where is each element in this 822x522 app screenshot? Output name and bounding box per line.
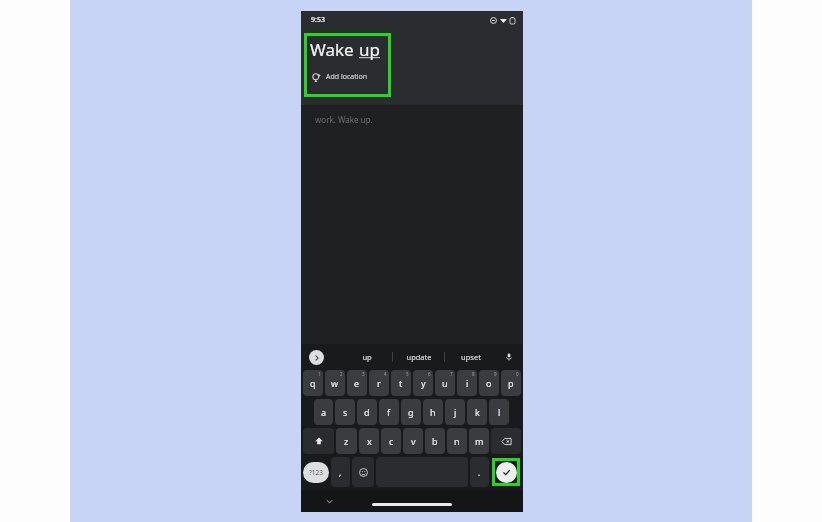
button[interactable]: k bbox=[467, 399, 487, 425]
staticText: x bbox=[367, 435, 372, 447]
button[interactable]: Hide keyboard bbox=[323, 495, 335, 507]
staticText: 6 bbox=[428, 371, 431, 377]
staticText: Add location bbox=[326, 72, 368, 82]
button[interactable]: b bbox=[425, 428, 445, 454]
button[interactable]: s bbox=[335, 399, 355, 425]
staticText: v bbox=[411, 435, 416, 447]
button[interactable]: d bbox=[357, 399, 377, 425]
button[interactable]: t bbox=[391, 370, 411, 396]
staticText: c bbox=[389, 435, 394, 447]
staticText: up bbox=[362, 352, 372, 362]
staticText: y bbox=[421, 377, 426, 389]
button[interactable]: upset bbox=[445, 344, 496, 370]
staticText: f bbox=[387, 406, 391, 418]
button[interactable]: l bbox=[489, 399, 509, 425]
button[interactable]: p bbox=[501, 370, 521, 396]
staticText: o bbox=[486, 377, 492, 389]
staticText: , bbox=[339, 467, 342, 478]
button[interactable]: Expand suggestions bbox=[309, 350, 324, 365]
staticText: u bbox=[442, 377, 448, 389]
staticText: 9 bbox=[494, 371, 497, 377]
button[interactable]: j bbox=[445, 399, 465, 425]
staticText: d bbox=[364, 406, 370, 418]
staticText: 8 bbox=[472, 371, 475, 377]
button[interactable]: i bbox=[457, 370, 477, 396]
button[interactable]: n bbox=[447, 428, 467, 454]
button[interactable]: , bbox=[331, 457, 350, 487]
button[interactable]: o bbox=[479, 370, 499, 396]
staticText: 0 bbox=[516, 371, 519, 377]
button[interactable]: Backspace bbox=[491, 428, 521, 454]
button[interactable]: u bbox=[435, 370, 455, 396]
staticText: a bbox=[321, 406, 327, 418]
staticText: i bbox=[466, 377, 469, 389]
staticText: 2 bbox=[340, 371, 343, 377]
staticText: t bbox=[399, 377, 403, 389]
staticText: work. Wake up. bbox=[315, 114, 373, 125]
staticText: b bbox=[432, 435, 438, 447]
button[interactable]: Add location bbox=[310, 70, 370, 84]
staticText: 5 bbox=[406, 371, 409, 377]
button[interactable]: y bbox=[413, 370, 433, 396]
button[interactable]: Done bbox=[496, 462, 517, 483]
staticText: h bbox=[430, 406, 436, 418]
button[interactable]: Voice input bbox=[502, 350, 516, 364]
button[interactable]: w bbox=[325, 370, 345, 396]
staticText: q bbox=[310, 377, 316, 389]
staticText: 4 bbox=[384, 371, 387, 377]
button[interactable]: e bbox=[347, 370, 367, 396]
button[interactable]: x bbox=[359, 428, 379, 454]
staticText: s bbox=[343, 406, 348, 418]
button[interactable]: z bbox=[336, 428, 357, 454]
staticText: 3 bbox=[362, 371, 365, 377]
staticText: Wake bbox=[310, 38, 359, 61]
button[interactable]: h bbox=[423, 399, 443, 425]
staticText: m bbox=[475, 435, 484, 447]
staticText: 9:53 bbox=[311, 15, 325, 25]
staticText: upset bbox=[461, 352, 481, 362]
staticText: up bbox=[359, 38, 380, 61]
staticText: r bbox=[377, 377, 381, 389]
button[interactable]: Shift bbox=[303, 428, 334, 454]
staticText: update bbox=[406, 352, 432, 362]
staticText: 7 bbox=[450, 371, 453, 377]
button[interactable]: g bbox=[401, 399, 421, 425]
staticText: l bbox=[498, 406, 501, 418]
button[interactable]: q bbox=[303, 370, 323, 396]
button[interactable]: . bbox=[470, 457, 489, 487]
staticText: g bbox=[408, 406, 414, 418]
button[interactable]: Emoji bbox=[352, 457, 374, 487]
button[interactable]: ?123 bbox=[303, 462, 329, 483]
staticText: w bbox=[331, 377, 339, 389]
staticText: z bbox=[344, 435, 349, 447]
staticText: p bbox=[508, 377, 514, 389]
button[interactable]: f bbox=[379, 399, 399, 425]
button[interactable]: v bbox=[403, 428, 423, 454]
staticText: ?123 bbox=[309, 468, 323, 477]
staticText: . bbox=[478, 467, 481, 478]
button[interactable]: r bbox=[369, 370, 389, 396]
staticText: e bbox=[354, 377, 360, 389]
button[interactable]: c bbox=[381, 428, 401, 454]
staticText: k bbox=[475, 406, 480, 418]
staticText: n bbox=[454, 435, 460, 447]
staticText: 1 bbox=[318, 371, 321, 377]
button[interactable]: m bbox=[469, 428, 489, 454]
button[interactable]: up bbox=[341, 344, 392, 370]
button[interactable]: a bbox=[314, 399, 333, 425]
staticText: j bbox=[454, 406, 457, 418]
button[interactable]: update bbox=[393, 344, 444, 370]
